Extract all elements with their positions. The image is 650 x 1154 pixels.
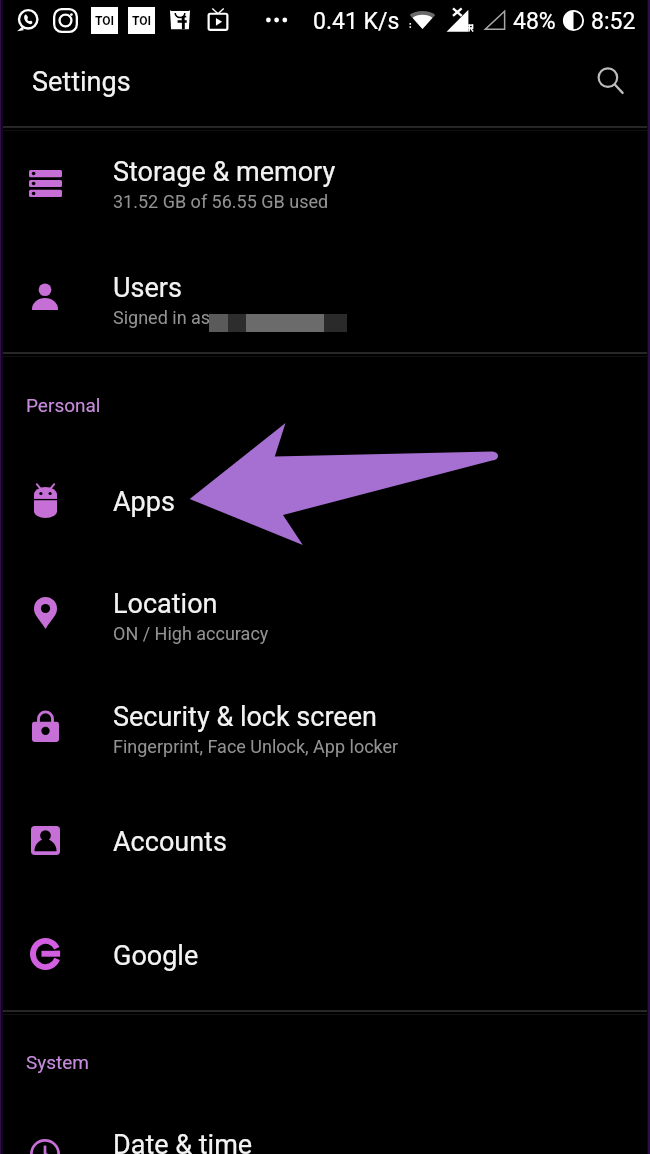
staticText: Accounts: [113, 826, 227, 858]
staticText: Google: [113, 940, 199, 972]
staticText: Location: [113, 588, 218, 620]
button[interactable]: Apps: [0, 444, 650, 557]
staticText: Fingerprint, Face Unlock, App locker: [113, 736, 399, 757]
staticText: Signed in as: [113, 307, 211, 328]
staticText: Security & lock screen: [113, 701, 377, 733]
staticText: 31.52 GB of 56.55 GB used: [113, 191, 329, 212]
staticText: System: [26, 1051, 90, 1073]
staticText: 0.41 K/s: [313, 8, 400, 35]
staticText: TOI: [132, 14, 152, 28]
staticText: Apps: [113, 486, 175, 518]
button[interactable]: Search: [586, 56, 634, 104]
staticText: Settings: [32, 66, 131, 98]
staticText: TOI: [95, 14, 115, 28]
staticText: Date & time: [113, 1129, 253, 1154]
button[interactable]: Users: [0, 240, 650, 352]
button[interactable]: Storage & memory: [0, 128, 650, 240]
staticText: 48%: [513, 8, 556, 35]
staticText: Storage & memory: [113, 156, 336, 188]
staticText: Users: [113, 272, 182, 304]
staticText: Personal: [26, 394, 101, 416]
button[interactable]: Google: [0, 896, 650, 1010]
button[interactable]: Date & time: [0, 1100, 650, 1154]
staticText: 8:52: [591, 8, 636, 35]
button[interactable]: Security & lock screen: [0, 670, 650, 783]
button[interactable]: Location: [0, 557, 650, 670]
button[interactable]: Accounts: [0, 783, 650, 896]
staticText: ON / High accuracy: [113, 623, 269, 644]
